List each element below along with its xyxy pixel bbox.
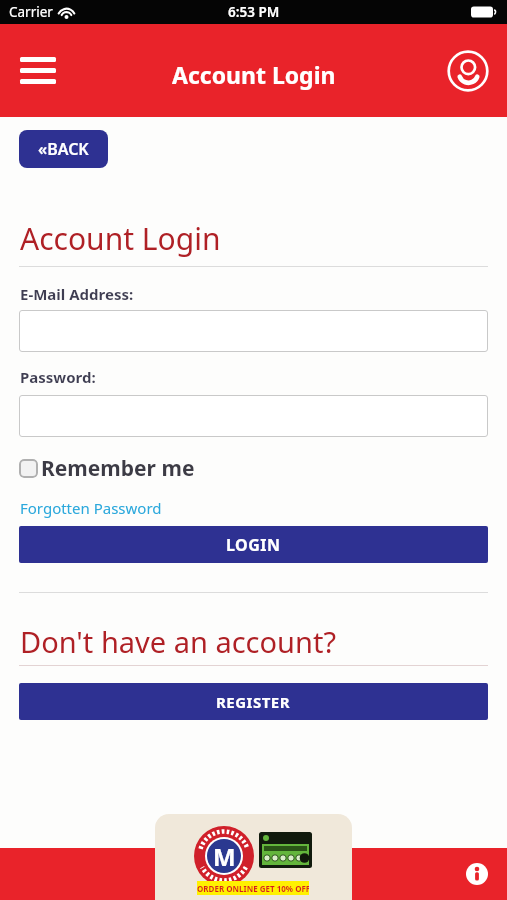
staticText: ORDER ONLINE GET 10% OFF — [197, 883, 309, 894]
staticText: Remember me — [41, 454, 195, 483]
button[interactable] — [19, 395, 488, 437]
staticText: REGISTER — [216, 692, 291, 712]
staticText: Account Login — [20, 218, 221, 259]
staticText: Password: — [20, 367, 96, 387]
button[interactable]: Forgotten Password — [20, 498, 162, 518]
staticText: Account Login — [172, 59, 336, 90]
staticText: M — [213, 840, 236, 873]
staticText: Carrier — [9, 3, 53, 21]
button[interactable]: LOGIN — [19, 526, 488, 563]
button[interactable]: M — [155, 814, 352, 900]
staticText: 6:53 PM — [228, 3, 280, 21]
button[interactable]: «BACK — [19, 130, 108, 168]
button[interactable] — [20, 57, 56, 84]
button[interactable]: Remember me — [19, 454, 195, 483]
button[interactable] — [19, 310, 488, 352]
button[interactable] — [446, 49, 490, 93]
staticText: LOGIN — [226, 534, 281, 556]
staticText: E-Mail Address: — [20, 284, 134, 304]
staticText: Don't have an account? — [20, 622, 336, 661]
button[interactable]: REGISTER — [19, 683, 488, 720]
button[interactable] — [466, 863, 488, 885]
staticText: «BACK — [38, 138, 89, 160]
